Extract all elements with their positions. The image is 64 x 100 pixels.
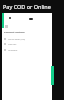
button[interactable]: Net banking (2, 47, 52, 52)
button[interactable]: Credit card (2, 41, 52, 46)
staticText: Cash on delivery (COD) (8, 38, 26, 40)
button[interactable]: Pay COD or Online Payment (2, 0, 52, 13)
staticText: Payment method (4, 30, 25, 33)
staticText: Pay COD or Online Payment (3, 3, 52, 10)
staticText: Credit card (8, 43, 17, 45)
button[interactable]: Cash on delivery (COD) (2, 36, 52, 41)
staticText: Net banking (8, 49, 18, 51)
